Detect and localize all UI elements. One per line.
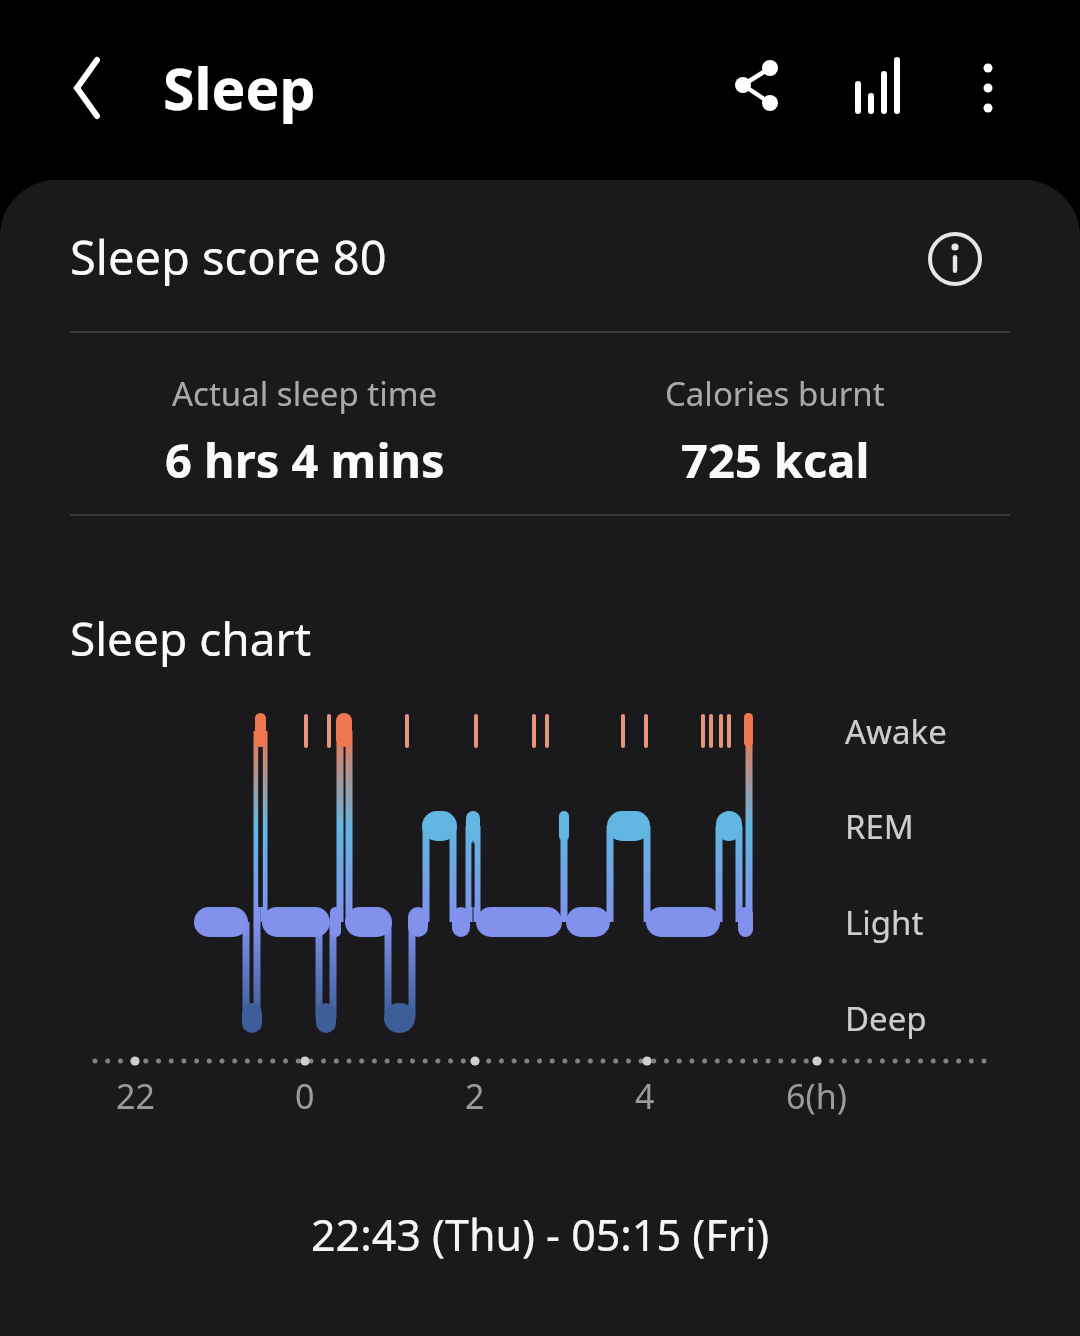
staticText: REM: [845, 804, 914, 849]
button[interactable]: [925, 229, 985, 289]
staticText: Calories burnt: [665, 371, 885, 416]
button[interactable]: [57, 58, 117, 118]
staticText: 22: [116, 1073, 155, 1119]
staticText: Deep: [845, 996, 927, 1041]
staticText: 6 hrs 4 mins: [165, 428, 445, 492]
staticText: Light: [845, 900, 924, 945]
button[interactable]: [850, 52, 914, 116]
staticText: Sleep chart: [70, 607, 312, 670]
staticText: 725 kcal: [681, 428, 870, 492]
staticText: Sleep score 80: [70, 225, 387, 289]
staticText: Sleep: [163, 49, 316, 127]
staticText: 0: [295, 1073, 315, 1119]
staticText: Actual sleep time: [172, 371, 438, 416]
staticText: 4: [635, 1073, 655, 1119]
button[interactable]: [958, 52, 1018, 112]
staticText: 2: [465, 1073, 485, 1119]
staticText: 6(h): [786, 1073, 847, 1119]
button[interactable]: [727, 54, 791, 118]
staticText: Awake: [845, 709, 947, 754]
staticText: 22:43 (Thu) - 05:15 (Fri): [311, 1205, 770, 1264]
